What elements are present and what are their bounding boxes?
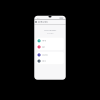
staticText: Notifications [38, 21, 48, 23]
staticText: Alerts [42, 40, 46, 42]
button[interactable]: Back [34, 20, 37, 24]
staticText: Mail [42, 46, 44, 48]
staticText: 9:41 [37, 17, 40, 19]
button[interactable]: Sounds [36, 52, 64, 58]
staticText: Clock [42, 60, 46, 62]
button[interactable]: Clock [36, 58, 64, 64]
button[interactable]: Alerts [36, 38, 64, 44]
staticText: Choose alert styles [43, 30, 56, 31]
staticText: to receive. [46, 32, 53, 34]
button[interactable]: Mail [36, 44, 64, 50]
